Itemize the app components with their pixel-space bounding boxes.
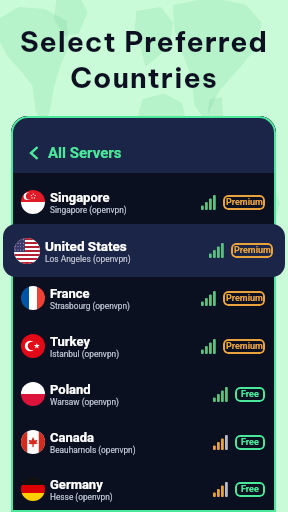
staticText: Poland (50, 382, 91, 397)
button[interactable]: Canada (11, 418, 276, 466)
staticText: Premium (234, 245, 271, 256)
staticText: Germany (50, 477, 103, 492)
button[interactable]: Germany (11, 466, 276, 512)
staticText: Istanbul (openvpn) (50, 349, 120, 359)
staticText: Strasbourg (openvpn) (50, 301, 130, 311)
staticText: Warsaw (openvpn) (50, 397, 120, 407)
staticText: Los Angeles (openvpn) (45, 254, 131, 264)
button[interactable]: Free (235, 482, 265, 497)
button[interactable]: United States (3, 224, 285, 277)
button[interactable]: Turkey (11, 322, 276, 370)
button[interactable]: Poland (11, 370, 276, 418)
staticText: Free (241, 389, 259, 400)
button[interactable]: Premium (231, 243, 273, 258)
staticText: France (50, 286, 90, 301)
button[interactable]: Back (11, 116, 276, 173)
staticText: Free (241, 484, 259, 495)
button[interactable]: Premium (223, 339, 265, 354)
button[interactable]: Free (235, 435, 265, 450)
other: Back (26, 145, 42, 161)
staticText: Premium (226, 341, 263, 352)
staticText: United States (45, 238, 127, 254)
staticText: Singapore (50, 190, 110, 205)
staticText: All Servers (48, 144, 122, 162)
button[interactable]: Free (235, 387, 265, 402)
staticText: Premium (226, 293, 263, 304)
staticText: Turkey (50, 334, 90, 349)
staticText: Beauharnols (openvpn) (50, 445, 136, 455)
staticText: Select Preferred Countries (0, 24, 288, 96)
button[interactable]: Premium (223, 195, 265, 210)
button[interactable]: Premium (223, 291, 265, 306)
button[interactable]: Singapore (11, 178, 276, 226)
staticText: Hesse (openvpn) (50, 492, 113, 502)
staticText: Canada (50, 430, 94, 445)
staticText: Premium (226, 197, 263, 208)
staticText: Free (241, 437, 259, 448)
staticText: Singapore (openvpn) (50, 205, 127, 215)
button[interactable]: France (11, 274, 276, 322)
